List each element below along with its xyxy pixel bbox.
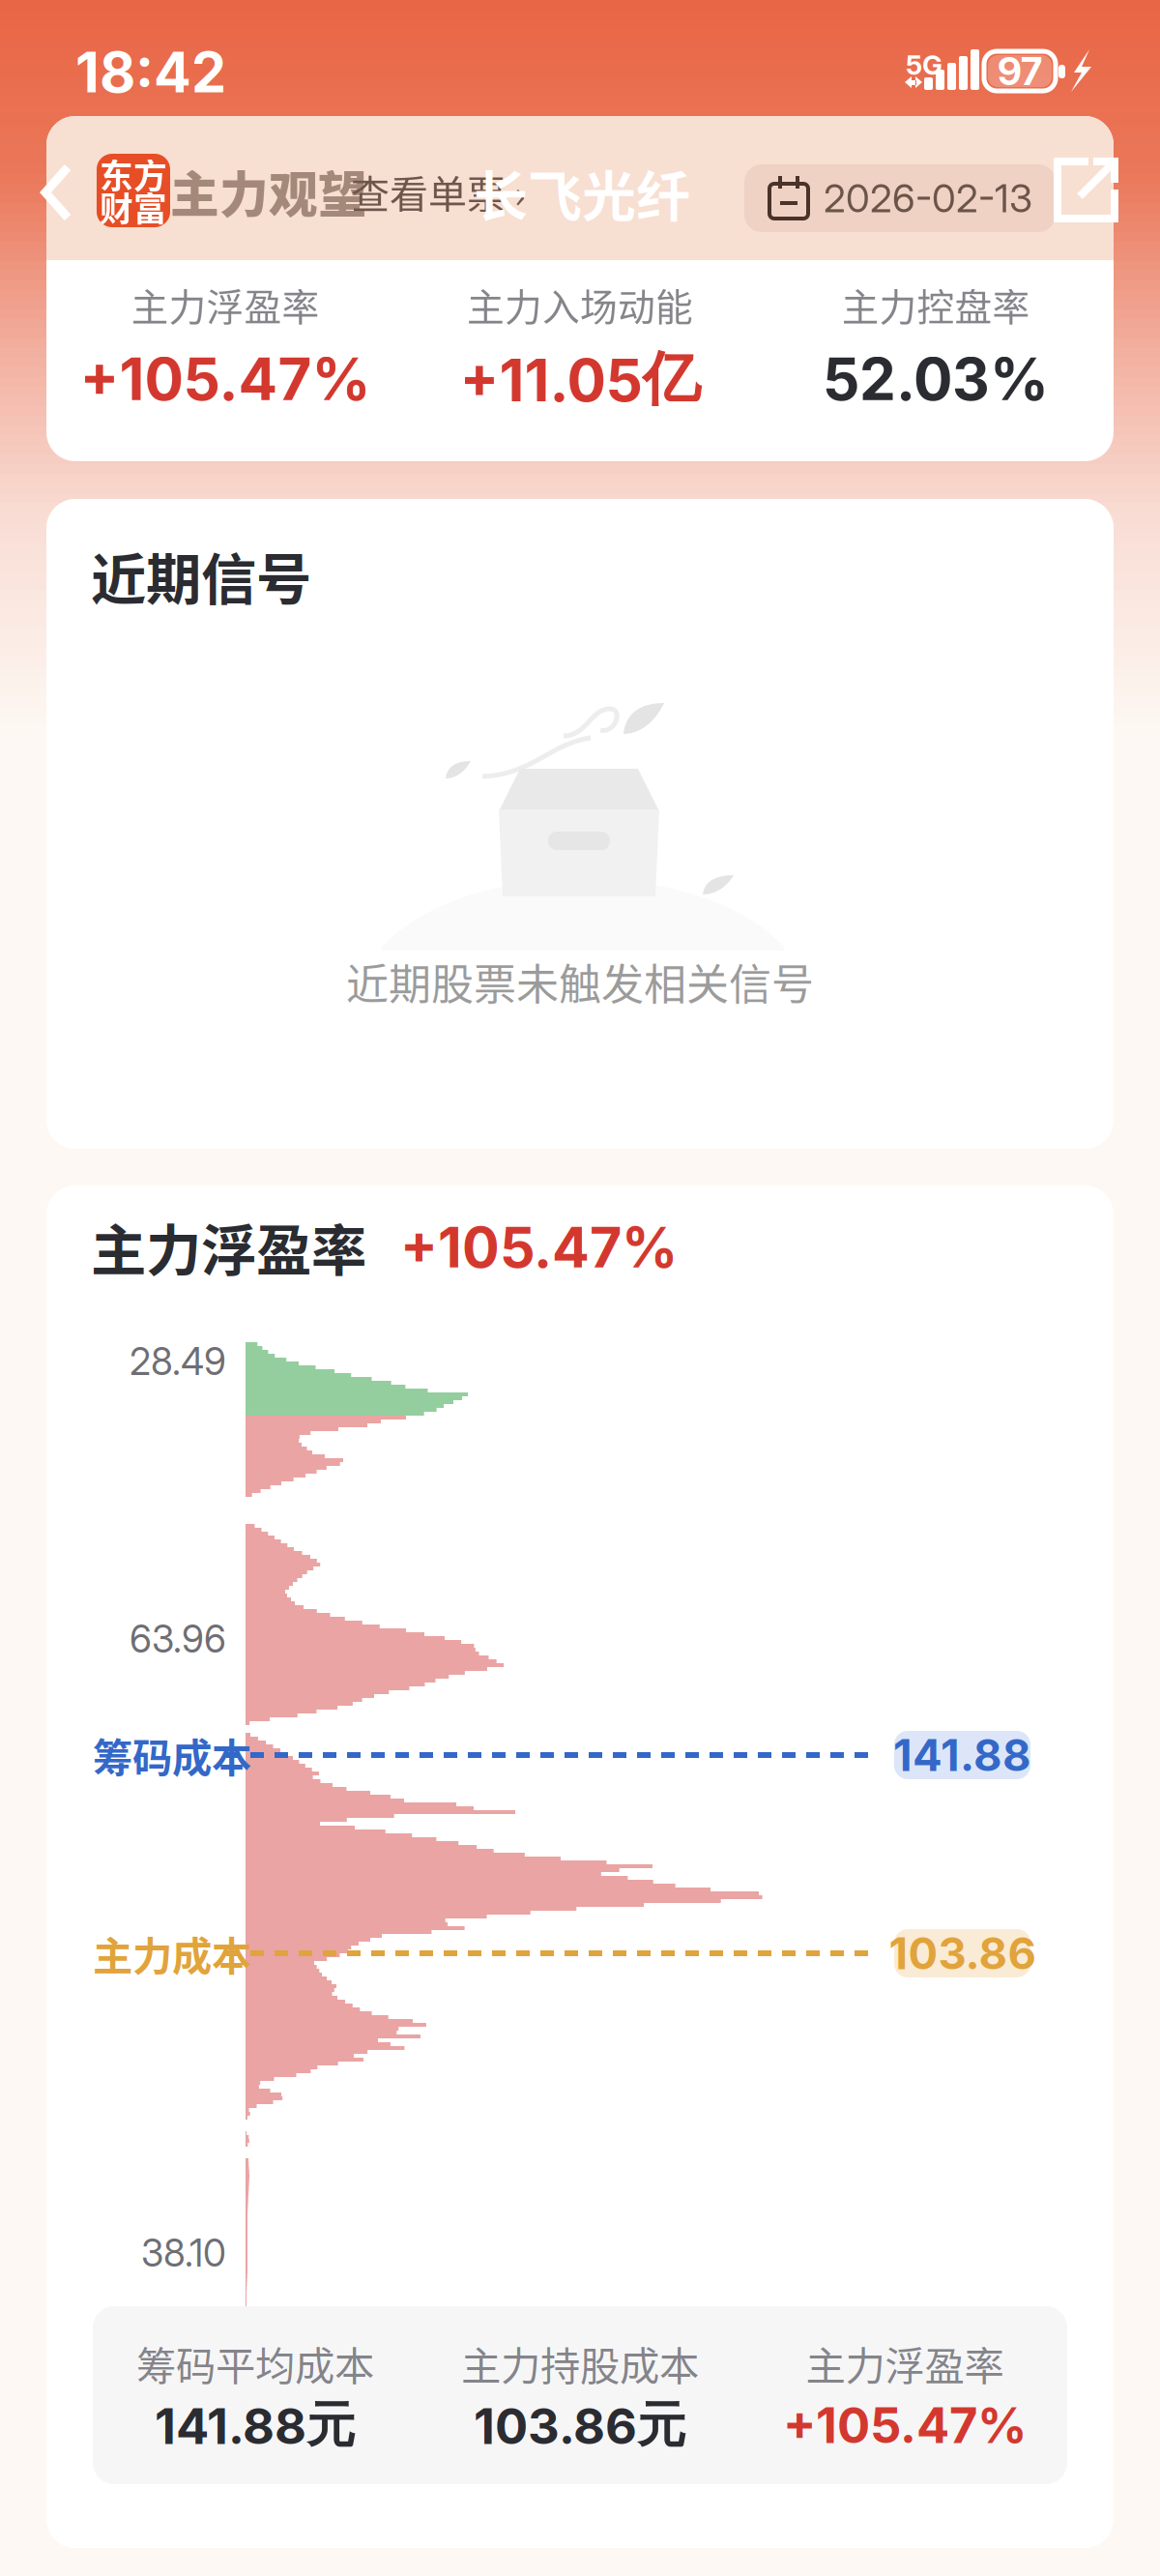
staticText: +105.47% <box>80 344 371 414</box>
staticText: 38.10 <box>141 2230 226 2276</box>
staticText: 筹码平均成本 <box>136 2334 374 2392</box>
staticText: 主力入场动能 <box>467 278 693 332</box>
staticText: 主力持股成本 <box>461 2334 699 2392</box>
staticText: 18:42 <box>75 39 226 106</box>
staticText: +105.47% <box>783 2395 1027 2455</box>
button[interactable]: 2026-02-13 <box>744 164 1056 232</box>
staticText: 筹码成本 <box>93 1726 251 1784</box>
staticText: 主力观望 <box>170 156 367 227</box>
staticText: 103.86元 <box>474 2394 686 2456</box>
staticText: 主力浮盈率 <box>131 278 319 332</box>
staticText: 5G <box>906 48 942 81</box>
staticText: 近期股票未触发相关信号 <box>346 951 814 1012</box>
staticText: 63.96 <box>130 1616 226 1662</box>
staticText: 主力浮盈率 <box>91 1206 366 1287</box>
staticText: 141.88元 <box>155 2394 356 2456</box>
button[interactable]: 查看单票 › <box>351 162 535 220</box>
staticText: 52.03% <box>823 344 1049 414</box>
staticText: 主力控盘率 <box>841 278 1030 332</box>
staticText: 141.88 <box>893 1729 1031 1782</box>
staticText: +105.47% <box>400 1214 678 1281</box>
staticText: 2026-02-13 <box>824 175 1032 222</box>
staticText: 东方 <box>100 150 167 198</box>
staticText: +11.05亿 <box>460 342 700 416</box>
staticText: 长飞光纤 <box>474 153 690 232</box>
button[interactable]: Share <box>1054 157 1119 224</box>
staticText: 财富 <box>100 183 167 231</box>
staticText: 查看单票 › <box>351 163 526 219</box>
staticText: 近期信号 <box>91 535 311 615</box>
staticText: 103.86 <box>889 1927 1036 1980</box>
staticText: 主力浮盈率 <box>806 2334 1004 2392</box>
staticText: 主力成本 <box>93 1924 251 1982</box>
staticText: 28.49 <box>130 1339 226 1384</box>
staticText: 97 <box>998 48 1042 94</box>
button[interactable]: Back <box>41 164 73 220</box>
